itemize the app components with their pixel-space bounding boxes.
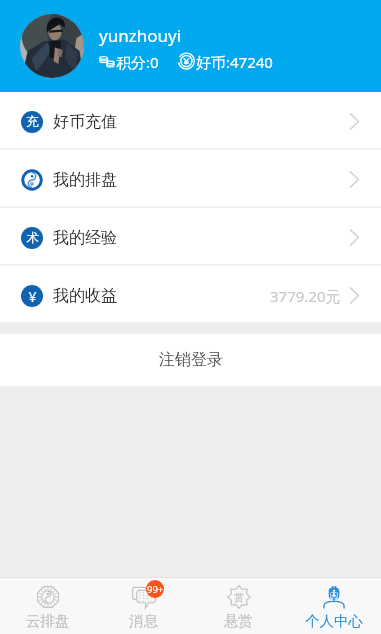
button[interactable]: ¥ [0,266,381,324]
staticText: ¥ [28,287,37,306]
button[interactable]: 赏 [191,578,286,634]
button[interactable]: 术 [0,208,381,266]
button[interactable]: 99+ [96,578,191,634]
staticText: 99+ [147,583,164,596]
staticText: 充 [26,114,39,130]
button[interactable]: 充 [0,92,381,150]
staticText: 我的经验 [53,228,117,248]
staticText: 我的排盘 [53,170,117,190]
staticText: 3779.20元 [270,286,341,306]
staticText: 术 [26,230,39,246]
staticText: 好币充值 [53,112,117,132]
staticText: 消息 [129,612,158,630]
staticText: 悬赏 [224,612,253,630]
button[interactable]: 注销登录 [0,334,381,386]
button[interactable]: Profile avatar [20,14,84,78]
button[interactable]: 我的排盘 [0,150,381,208]
button[interactable]: 云排盘 [0,578,96,634]
staticText: 个人中心 [305,612,363,630]
staticText: 云排盘 [26,612,70,630]
staticText: 赏 [234,591,244,604]
button[interactable]: 个人中心 [286,578,381,634]
staticText: 注销登录 [159,350,223,370]
staticText: 好币:47240 [196,52,273,72]
staticText: yunzhouyi [99,24,182,47]
staticText: 积分:0 [116,52,159,72]
staticText: 我的收益 [53,286,117,306]
